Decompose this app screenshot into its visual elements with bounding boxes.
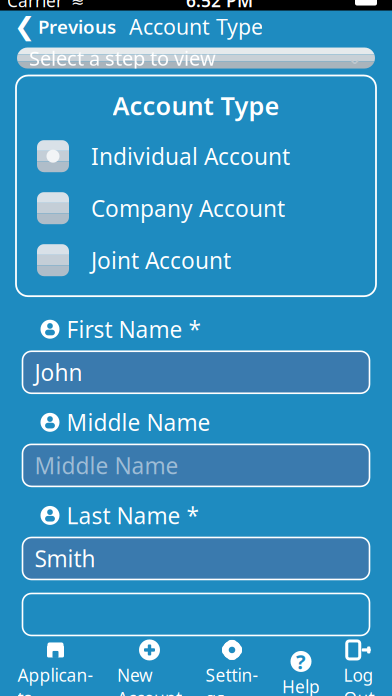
staticText: John <box>34 357 82 387</box>
staticText: Smith <box>34 543 95 573</box>
button[interactable]: Log Out <box>337 651 380 696</box>
staticText: Applicants <box>17 663 93 696</box>
button[interactable]: Settings <box>199 651 264 696</box>
button[interactable]: ? <box>276 651 326 696</box>
staticText: 6:52 PM <box>186 0 253 12</box>
staticText: ≋ <box>71 0 84 10</box>
staticText: Last Name * <box>66 500 198 530</box>
button[interactable]: Individual Account <box>18 130 374 182</box>
button[interactable]: Select a step to view <box>17 47 375 68</box>
staticText: Company Account <box>91 193 285 223</box>
staticText: Carrier <box>7 0 63 12</box>
staticText: Joint Account <box>91 245 231 275</box>
staticText: Middle Name <box>34 450 178 480</box>
button[interactable]: Joint Account <box>18 234 374 286</box>
staticText: First Name * <box>66 314 200 344</box>
staticText: New Account <box>117 663 182 696</box>
button[interactable]: New Account <box>111 651 188 696</box>
staticText: Account Type <box>112 88 279 122</box>
staticText: Account Type <box>129 12 263 41</box>
staticText: Select a step to view <box>29 45 216 71</box>
staticText: Middle Name <box>66 407 210 437</box>
button[interactable]: ❮ <box>0 8 116 45</box>
button[interactable]: Applicants <box>11 651 99 696</box>
staticText: Help <box>282 675 320 696</box>
staticText: Settings <box>205 663 258 696</box>
staticText: Log Out <box>343 663 374 696</box>
staticText: Individual Account <box>91 141 290 171</box>
staticText: Previous <box>38 14 116 39</box>
button[interactable]: Company Account <box>18 182 374 234</box>
staticText: ⌄ <box>347 47 363 69</box>
staticText: ? <box>296 648 306 675</box>
staticText: ❮ <box>14 12 35 41</box>
